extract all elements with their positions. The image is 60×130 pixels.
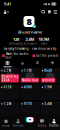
staticText: Inbox [38, 124, 46, 127]
staticText: Get the presets [36, 54, 58, 57]
staticText: 864K [44, 69, 52, 72]
button[interactable]: 1.1M [20, 68, 40, 83]
button[interactable]: 18.9M [37, 36, 51, 45]
button[interactable]: Search [40, 8, 46, 16]
staticText: 128 [13, 36, 19, 42]
staticText: + [7, 8, 9, 14]
button[interactable]: Videos [0, 61, 15, 67]
staticText: 977K [24, 102, 32, 106]
button[interactable]: 612K [0, 85, 19, 100]
staticText: ✓ [33, 25, 35, 28]
button[interactable]: 977K [20, 101, 40, 117]
staticText: Likes [41, 42, 47, 45]
staticText: Profile [49, 124, 59, 127]
staticText: Home [2, 124, 10, 127]
staticText: Everyday filmmaking · new drops weekly [4, 47, 56, 51]
staticText: 2.7M [4, 69, 11, 72]
staticText: 1.2M [4, 102, 11, 106]
staticText: Following [9, 42, 23, 45]
button[interactable]: Create [24, 115, 36, 129]
button[interactable]: Saved [46, 8, 52, 16]
button[interactable]: Home [0, 115, 12, 129]
staticText: Rewind my 2024 [2, 75, 18, 82]
staticText: Followers [23, 42, 36, 45]
button[interactable]: 128 [9, 36, 23, 45]
staticText: 3.4M [44, 102, 51, 106]
button[interactable]: 3.4M [40, 101, 60, 117]
button[interactable]: 438K [20, 85, 40, 100]
button[interactable]: Settings and privacy [52, 8, 58, 16]
button[interactable]: 2.4M [23, 36, 37, 45]
button[interactable]: Inbox [36, 115, 48, 129]
button[interactable]: 864K [40, 68, 60, 83]
button[interactable]: Profile [48, 115, 60, 129]
button[interactable]: 1.9M [40, 85, 60, 100]
staticText: 438K [24, 85, 32, 89]
button[interactable]: Get the presets [32, 54, 58, 57]
staticText: 612K [4, 85, 12, 89]
button[interactable]: Saved [30, 61, 45, 67]
staticText: 8 [26, 15, 31, 28]
staticText: 9:41 [4, 1, 11, 7]
staticText: Lens test [42, 78, 54, 82]
button[interactable]: 1.2M [0, 101, 19, 117]
button[interactable]: Watch the studio tour [2, 52, 28, 59]
button[interactable]: Liked [45, 61, 60, 67]
staticText: Friends [13, 124, 23, 127]
staticText: 2.4M [25, 36, 34, 42]
button[interactable]: Private [15, 61, 30, 67]
button[interactable]: 2.7M [0, 68, 19, 83]
staticText: 1.9M [44, 85, 51, 89]
button[interactable]: Friends [12, 115, 24, 129]
staticText: Watch the studio tour [5, 52, 28, 59]
staticText: 18.9M [38, 36, 49, 42]
button[interactable]: Add friends [2, 8, 10, 16]
staticText: @username [18, 29, 42, 35]
staticText: 1.1M [24, 69, 31, 72]
staticText: Studio tour [22, 78, 38, 82]
